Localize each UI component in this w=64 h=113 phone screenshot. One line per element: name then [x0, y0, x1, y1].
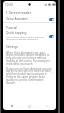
- button[interactable]: Home: [20, 102, 38, 110]
- button[interactable]: Navigate up: [3, 9, 9, 15]
- staticText: Quick tapping: [6, 31, 27, 35]
- button[interactable]: Recents: [3, 102, 20, 110]
- staticText: Tutorial: [6, 26, 18, 30]
- button[interactable]: Quick tapping: [3, 30, 56, 42]
- staticText: Use a quick tap to select an item instea…: [6, 35, 49, 41]
- staticText: Voice Assistant: [6, 17, 49, 21]
- button[interactable]: Navigate up: [3, 9, 56, 15]
- button[interactable]: Toggle: [49, 18, 54, 21]
- button[interactable]: Voice Assistant: [3, 16, 56, 22]
- staticText: Settings: [6, 45, 18, 49]
- staticText: When Voice Assistant is on, your device …: [6, 51, 53, 66]
- staticText: Screen reader: [9, 10, 32, 15]
- button[interactable]: Toggle: [49, 35, 54, 38]
- staticText: 10:30: [5, 3, 13, 7]
- button[interactable]: Tutorial: [3, 23, 56, 32]
- button[interactable]: Back: [38, 102, 56, 110]
- staticText: If you turn on Voice Assistant you can t…: [6, 67, 53, 85]
